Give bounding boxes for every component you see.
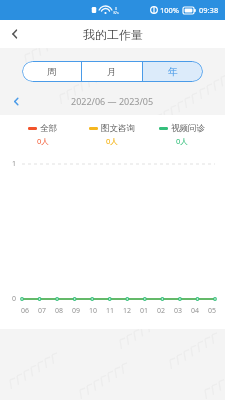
staticText: 03 [174,306,183,316]
staticText: 0人 [106,136,118,146]
staticText: 08 [55,306,64,316]
staticText: 11 [106,306,115,316]
staticText: 01 [140,306,149,316]
staticText: 02 [157,306,166,316]
staticText: 12 [123,306,132,316]
staticText: 全部 [40,123,57,134]
staticText: 图文咨询 [101,123,135,134]
staticText: 0人 [37,136,49,146]
staticText: 07 [38,306,47,316]
button[interactable]: 全部 [8,123,77,146]
staticText: 06 [21,306,30,316]
staticText: 年 [168,66,178,78]
staticText: 2022/06 — 2023/05 [71,95,154,107]
staticText: 100% [160,5,180,15]
staticText: 09:38 [199,5,219,15]
button[interactable]: Back [0,20,30,48]
staticText: 10 [89,306,98,316]
staticText: 视频问诊 [171,123,205,134]
button[interactable]: 月 [82,61,142,82]
button[interactable]: 周 [22,61,81,82]
staticText: 09 [72,306,81,316]
button[interactable]: 年 [143,61,203,82]
staticText: 我的工作量 [83,27,143,42]
staticText: 月 [107,66,117,78]
button[interactable]: 图文咨询 [77,123,147,146]
button[interactable]: 视频问诊 [147,123,217,146]
staticText: 04 [191,306,200,316]
staticText: 05 [208,306,217,316]
staticText: 0人 [176,136,188,146]
staticText: 1 [12,159,17,169]
staticText: 周 [47,66,57,78]
button[interactable]: Previous period [6,93,26,109]
staticText: 0 K/s [113,6,119,15]
staticText: 0 [12,294,17,304]
